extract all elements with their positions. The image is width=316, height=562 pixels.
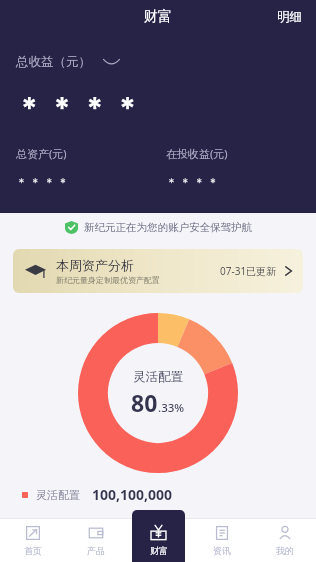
staticText: 80 [131,387,158,418]
staticText: 财富 [144,8,172,26]
button[interactable]: 产品 [64,510,127,562]
button[interactable]: 明细 [263,2,316,32]
staticText: 新纪元量身定制最优资产配置 [56,275,160,285]
staticText: 灵活配置 [36,488,80,502]
staticText: 在投收益(元) [166,146,228,161]
staticText: 总收益（元） [16,54,91,70]
staticText: 灵活配置 [133,369,183,385]
staticText: 资讯 [213,545,231,556]
staticText: 本周资产分析 [56,257,134,273]
staticText: 07-31已更新 [220,264,277,278]
staticText: 明细 [277,9,302,25]
staticText: 首页 [24,545,42,556]
button[interactable]: 首页 [0,510,64,562]
button[interactable]: Toggle amount visibility [99,50,123,74]
staticText: ＊ ＊ ＊ ＊ [16,88,141,124]
button[interactable]: 本周资产分析 [13,249,303,293]
staticText: 100,100,000 [92,485,173,504]
staticText: 我的 [276,545,294,556]
button[interactable]: 财富 [127,510,190,562]
staticText: ＊ ＊ ＊ ＊ [16,174,69,189]
button[interactable]: 我的 [253,510,316,562]
staticText: .33% [158,400,185,416]
staticText: 财富 [150,545,168,556]
staticText: 产品 [87,545,105,556]
staticText: 总资产(元) [16,146,67,161]
staticText: 新纪元正在为您的账户安全保驾护航 [84,221,252,234]
button[interactable]: 资讯 [190,510,253,562]
staticText: ＊ ＊ ＊ ＊ [166,174,219,189]
